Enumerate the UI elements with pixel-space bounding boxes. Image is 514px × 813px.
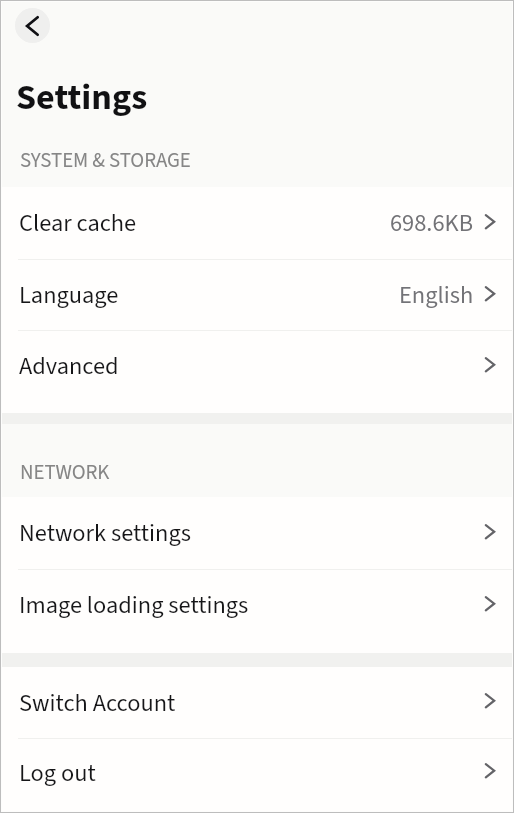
button[interactable]: Clear cache — [2, 187, 512, 260]
button[interactable]: Log out — [2, 739, 512, 807]
staticText: Settings — [16, 72, 148, 123]
staticText: Advanced — [19, 349, 119, 384]
button[interactable]: Language — [2, 260, 512, 331]
staticText: 698.6KB — [390, 206, 474, 241]
staticText: SYSTEM & STORAGE — [20, 146, 191, 176]
staticText: Switch Account — [19, 686, 176, 721]
button[interactable]: Switch Account — [2, 667, 512, 739]
button[interactable]: Network settings — [2, 497, 512, 570]
button[interactable]: Image loading settings — [2, 570, 512, 641]
staticText: Network settings — [19, 516, 191, 551]
staticText: NETWORK — [20, 458, 110, 488]
staticText: Image loading settings — [19, 588, 249, 623]
button[interactable]: Back — [15, 8, 50, 43]
staticText: Log out — [19, 756, 96, 791]
button[interactable]: Advanced — [2, 331, 512, 402]
staticText: Clear cache — [19, 206, 137, 241]
staticText: English — [399, 278, 474, 313]
staticText: Language — [19, 278, 119, 313]
